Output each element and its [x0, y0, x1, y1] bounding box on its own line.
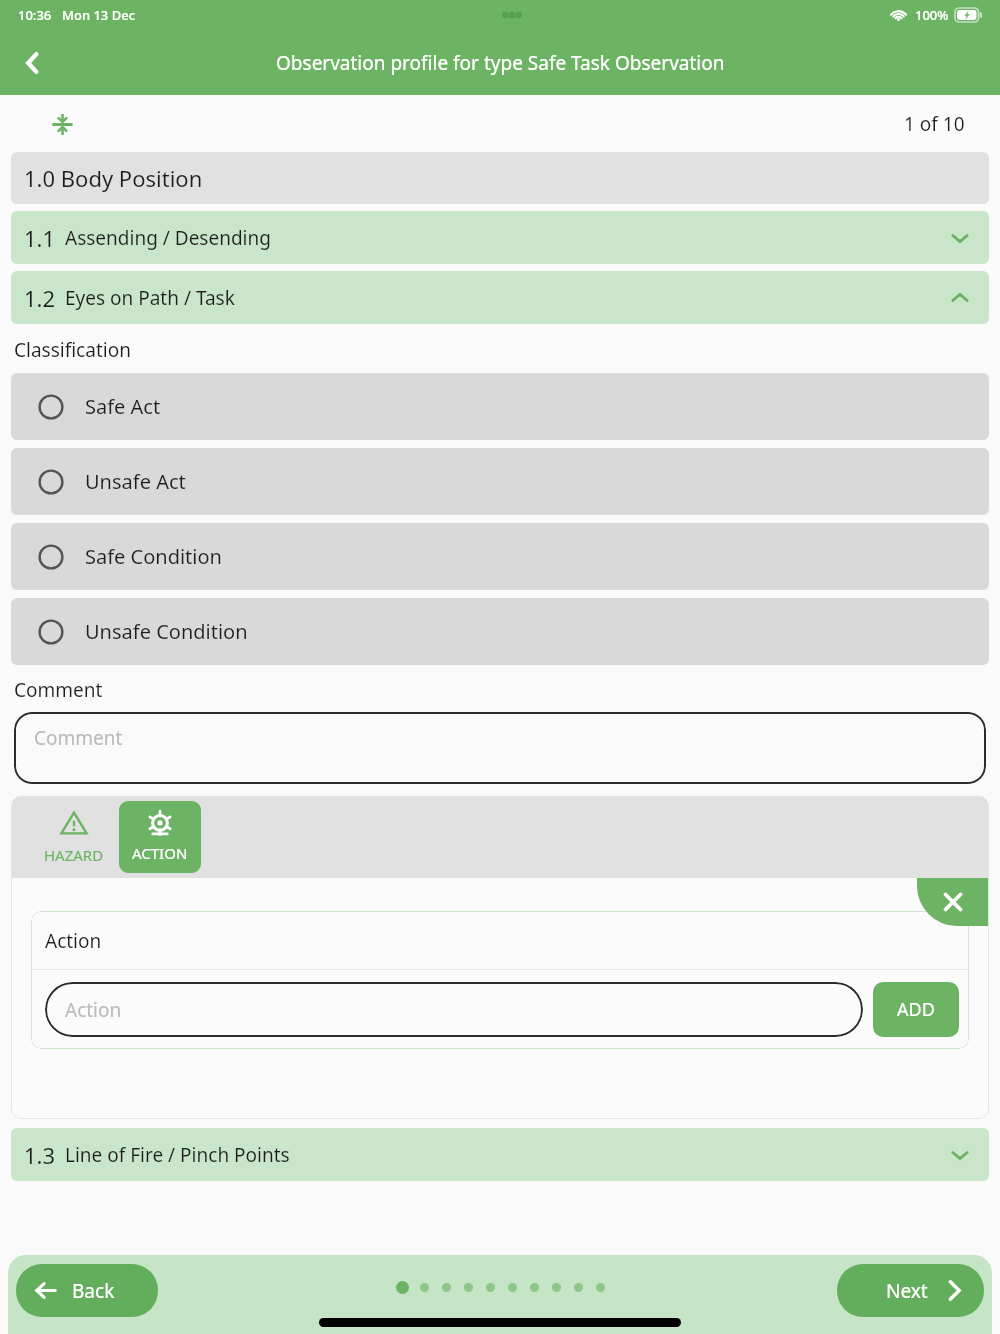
staticText: Action — [65, 997, 122, 1023]
button[interactable]: Safe Condition — [11, 523, 989, 590]
staticText: Assending / Desending — [65, 225, 271, 251]
staticText: Safe Condition — [85, 543, 222, 570]
button[interactable]: HAZARD — [31, 796, 117, 878]
staticText: 1.3 — [24, 1140, 56, 1170]
button[interactable]: Next — [837, 1264, 984, 1317]
button[interactable]: Unsafe Act — [11, 448, 989, 515]
staticText: Comment — [34, 725, 123, 751]
button[interactable]: 1.0 Body Position — [11, 152, 989, 204]
staticText: Observation profile for type Safe Task O… — [276, 50, 725, 76]
button[interactable]: Comment — [14, 712, 986, 784]
button[interactable]: Collapse all sections — [43, 105, 81, 143]
button[interactable]: Back — [10, 40, 56, 86]
staticText: Action — [45, 928, 102, 954]
button[interactable]: 1.2 — [11, 271, 989, 324]
staticText: 10:36 — [18, 6, 52, 24]
staticText: 1.0 Body Position — [24, 163, 203, 193]
staticText: ACTION — [132, 843, 188, 863]
button[interactable]: ADD — [873, 982, 959, 1037]
staticText: 1 of 10 — [904, 111, 965, 137]
button[interactable]: 1.1 — [11, 211, 989, 264]
staticText: Unsafe Act — [85, 468, 186, 495]
staticText: Safe Act — [85, 393, 161, 420]
staticText: 100% — [915, 6, 949, 24]
button[interactable]: ACTION — [119, 801, 201, 873]
staticText: Mon 13 Dec — [62, 6, 136, 24]
staticText: 1.2 — [24, 283, 56, 313]
button[interactable]: 1.3 — [11, 1128, 989, 1181]
button[interactable]: Back — [16, 1264, 158, 1317]
staticText: HAZARD — [44, 845, 104, 865]
staticText: 1.1 — [24, 223, 56, 253]
staticText: ADD — [897, 997, 935, 1022]
staticText: Unsafe Condition — [85, 618, 248, 645]
button[interactable]: Close — [917, 878, 989, 926]
staticText: Next — [886, 1278, 928, 1304]
staticText: Eyes on Path / Task — [65, 285, 235, 311]
button[interactable]: Unsafe Condition — [11, 598, 989, 665]
staticText: Comment — [14, 677, 103, 703]
button[interactable]: Action — [45, 982, 863, 1037]
staticText: Classification — [14, 337, 131, 363]
button[interactable]: Safe Act — [11, 373, 989, 440]
staticText: Line of Fire / Pinch Points — [65, 1142, 290, 1168]
staticText: Back — [72, 1278, 115, 1304]
